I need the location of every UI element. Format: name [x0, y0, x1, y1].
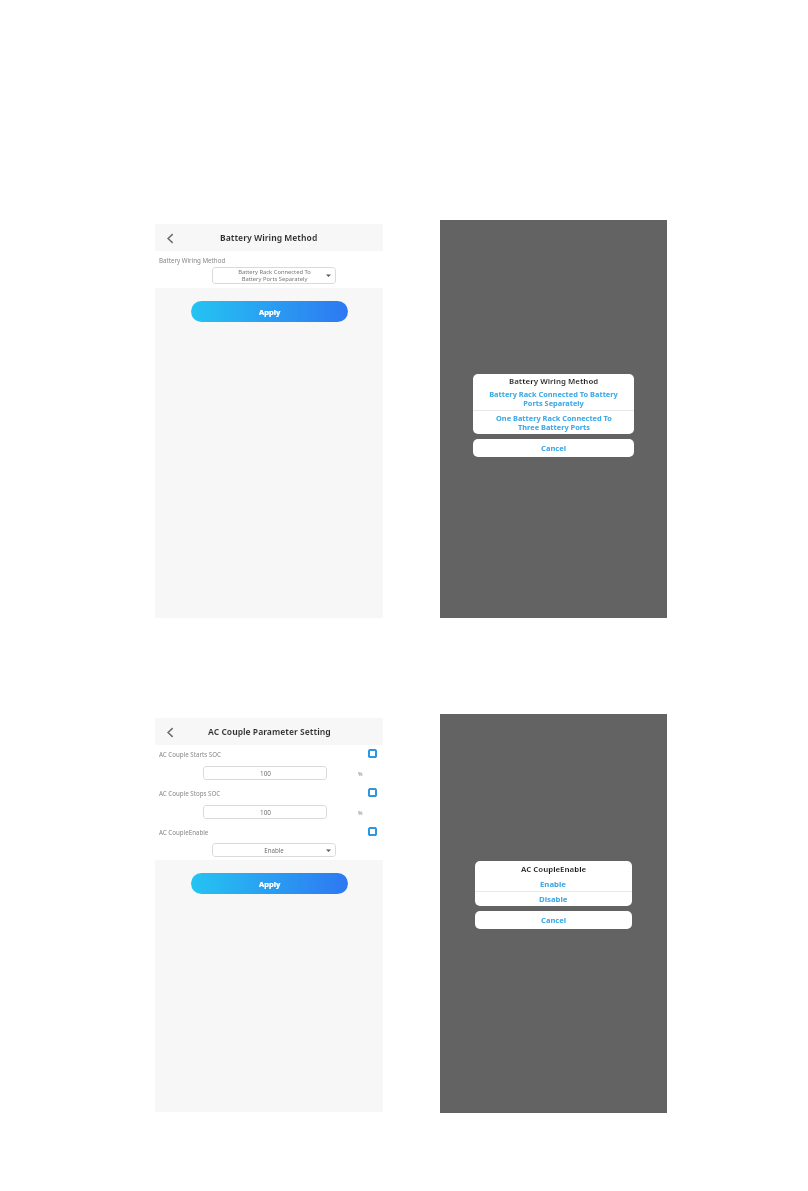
staticText: Battery Wiring Method	[159, 256, 226, 264]
button[interactable]: Cancel	[475, 911, 632, 929]
staticText: Enable	[264, 846, 284, 854]
button[interactable]: Checkbox	[366, 786, 379, 799]
button[interactable]: One Battery Rack Connected To Three Batt…	[473, 411, 634, 434]
staticText: Battery Wiring Method	[220, 232, 318, 244]
staticText: AC Couple Parameter Setting	[208, 726, 331, 738]
button[interactable]: Cancel	[473, 439, 634, 457]
button[interactable]: Battery Rack Connected To Battery Ports …	[212, 267, 336, 284]
button[interactable]: 100	[203, 805, 327, 819]
staticText: %	[358, 809, 363, 816]
staticText: AC CoupleEnable	[521, 864, 587, 875]
staticText: Apply	[259, 879, 281, 889]
button[interactable]: Battery Rack Connected To Battery Ports …	[473, 389, 634, 410]
button[interactable]: Back	[159, 227, 181, 249]
button[interactable]: Apply	[475, 869, 632, 890]
button[interactable]: Apply	[191, 873, 348, 894]
staticText: 100	[260, 808, 271, 817]
staticText: Battery Wiring Method	[509, 376, 599, 387]
staticText: Cancel	[541, 915, 567, 925]
button[interactable]: Checkbox	[366, 747, 379, 760]
staticText: Apply	[543, 875, 565, 885]
staticText: Enable	[540, 879, 567, 890]
staticText: AC Couple Stops SOC	[159, 789, 366, 797]
staticText: Cancel	[541, 443, 567, 453]
staticText: AC Couple Starts SOC	[159, 750, 366, 758]
staticText: AC CoupleEnable	[159, 828, 366, 836]
button[interactable]: Disable	[475, 892, 632, 906]
button[interactable]: Apply	[191, 301, 348, 322]
staticText: Disable	[539, 894, 568, 905]
staticText: Apply	[259, 307, 281, 317]
staticText: 100	[260, 769, 271, 778]
button[interactable]: Back	[159, 721, 181, 743]
button[interactable]: Enable	[475, 877, 632, 891]
button[interactable]: AC Couple Starts SOC	[159, 745, 379, 762]
button[interactable]: 100	[203, 766, 327, 780]
staticText: Battery Rack Connected To Battery Ports …	[489, 389, 618, 408]
staticText: Battery Rack Connected To Battery Ports …	[238, 268, 311, 283]
button[interactable]: Checkbox	[366, 825, 379, 838]
button[interactable]: AC CoupleEnable	[159, 823, 379, 840]
staticText: %	[358, 770, 363, 777]
button[interactable]: Enable	[212, 843, 336, 857]
button[interactable]: AC Couple Stops SOC	[159, 784, 379, 801]
staticText: One Battery Rack Connected To Three Batt…	[496, 413, 612, 432]
